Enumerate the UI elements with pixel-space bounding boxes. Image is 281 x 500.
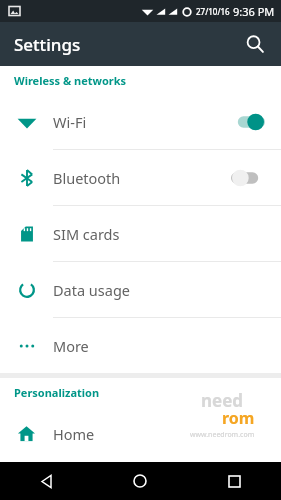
button[interactable]: Home — [0, 406, 281, 461]
button[interactable]: Wi-Fi — [0, 94, 281, 149]
button[interactable]: Back — [0, 462, 93, 500]
staticText: www.needrom.com — [190, 430, 255, 440]
staticText: 9:36 PM — [233, 4, 275, 19]
staticText: Settings — [14, 33, 81, 56]
button[interactable]: Search — [237, 26, 273, 62]
button[interactable]: Toggle off — [231, 167, 265, 189]
staticText: Wi-Fi — [53, 112, 231, 132]
button[interactable]: More — [0, 318, 281, 373]
button[interactable]: Data usage — [0, 262, 281, 317]
staticText: SIM cards — [53, 224, 281, 244]
staticText: More — [53, 336, 281, 356]
button[interactable]: SIM cards — [0, 206, 281, 261]
staticText: need — [201, 389, 244, 412]
button[interactable]: Toggle on — [231, 111, 265, 133]
staticText: Personalization — [14, 385, 100, 400]
staticText: rom — [222, 407, 255, 429]
staticText: 27/10/16 — [196, 6, 230, 17]
button[interactable]: Bluetooth — [0, 150, 281, 205]
button[interactable]: Home — [93, 462, 187, 500]
staticText: Bluetooth — [53, 168, 231, 188]
button[interactable]: Recents — [187, 462, 281, 500]
staticText: Wireless & networks — [14, 73, 127, 88]
staticText: Data usage — [53, 280, 281, 300]
staticText: Home — [53, 424, 281, 444]
